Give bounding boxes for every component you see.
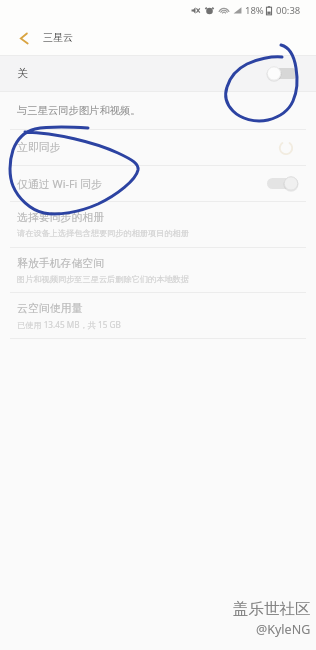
staticText: 盖乐世社区 (233, 599, 311, 619)
staticText: 与三星云同步图片和视频。 (17, 104, 141, 117)
staticText: @KyleNG (256, 621, 311, 638)
button[interactable]: 仅通过 Wi-Fi 同步 (0, 166, 316, 201)
staticText: 图片和视频同步至三星云后删除它们的本地数据 (17, 274, 189, 284)
staticText: 仅通过 Wi-Fi 同步 (17, 176, 267, 191)
staticText: 请在设备上选择包含想要同步的相册项目的相册 (17, 228, 189, 238)
staticText: 立即同步 (17, 141, 278, 155)
staticText: 00:38 (276, 4, 301, 17)
button[interactable]: 选择要同步的相册 (0, 202, 316, 247)
staticText: 选择要同步的相册 (17, 211, 105, 225)
staticText: 云空间使用量 (17, 302, 83, 316)
button[interactable]: 立即同步 (0, 130, 316, 165)
staticText: 释放手机存储空间 (17, 257, 105, 271)
button[interactable]: 释放手机存储空间 (0, 248, 316, 292)
staticText: 三星云 (43, 31, 73, 44)
button[interactable]: 云空间使用量 (0, 293, 316, 338)
button[interactable]: 关 (0, 56, 316, 91)
staticText: 18% (245, 4, 264, 17)
button[interactable]: Back (12, 26, 36, 50)
staticText: 关 (17, 67, 267, 81)
staticText: 已使用 13.45 MB，共 15 GB (17, 319, 121, 330)
